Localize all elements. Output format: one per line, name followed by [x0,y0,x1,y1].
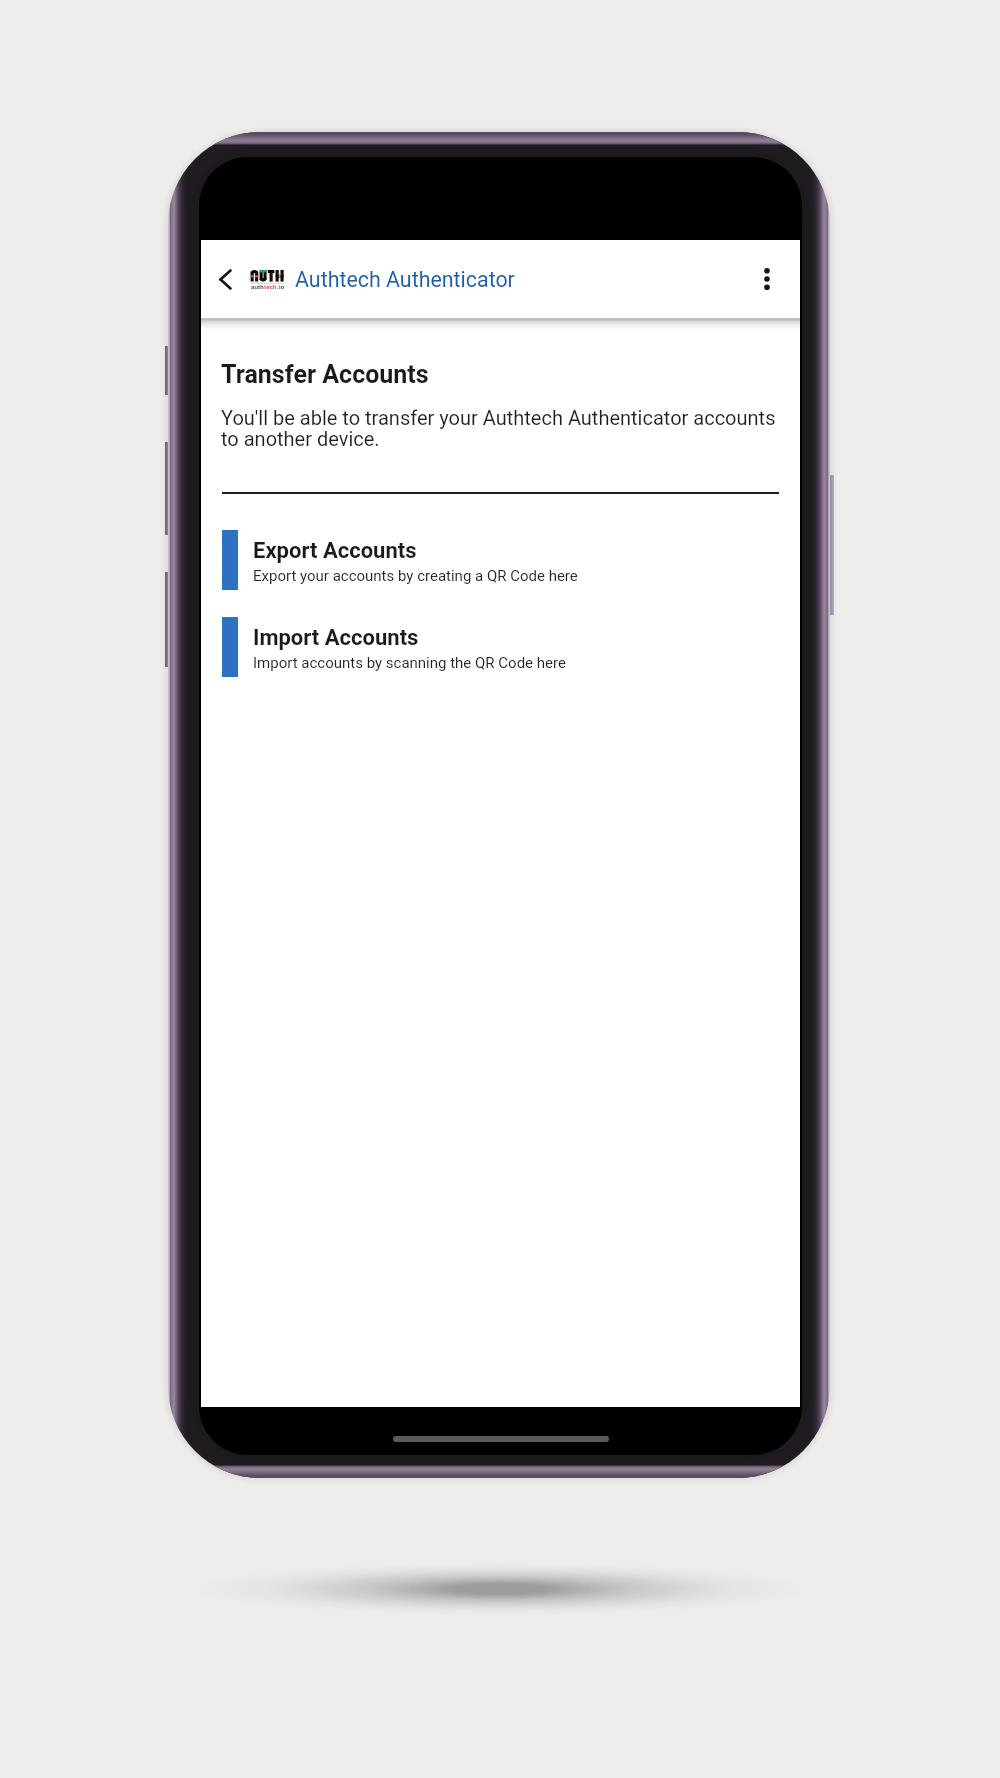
staticText: Import Accounts [253,625,419,651]
button[interactable]: Import Accounts [201,617,800,677]
staticText: auth [251,283,264,290]
staticText: You'll be able to transfer your Authtech… [221,406,779,451]
button[interactable]: Export Accounts [201,530,800,590]
staticText: Transfer Accounts [221,360,429,389]
staticText: Import accounts by scanning the QR Code … [253,654,566,672]
staticText: .io [277,283,285,290]
button[interactable]: Back [203,257,247,301]
staticText: Export your accounts by creating a QR Co… [253,567,578,585]
staticText: Authtech Authenticator [295,267,515,292]
staticText: tech [264,283,277,290]
button[interactable]: More options [745,257,789,301]
staticText: Export Accounts [253,538,417,564]
